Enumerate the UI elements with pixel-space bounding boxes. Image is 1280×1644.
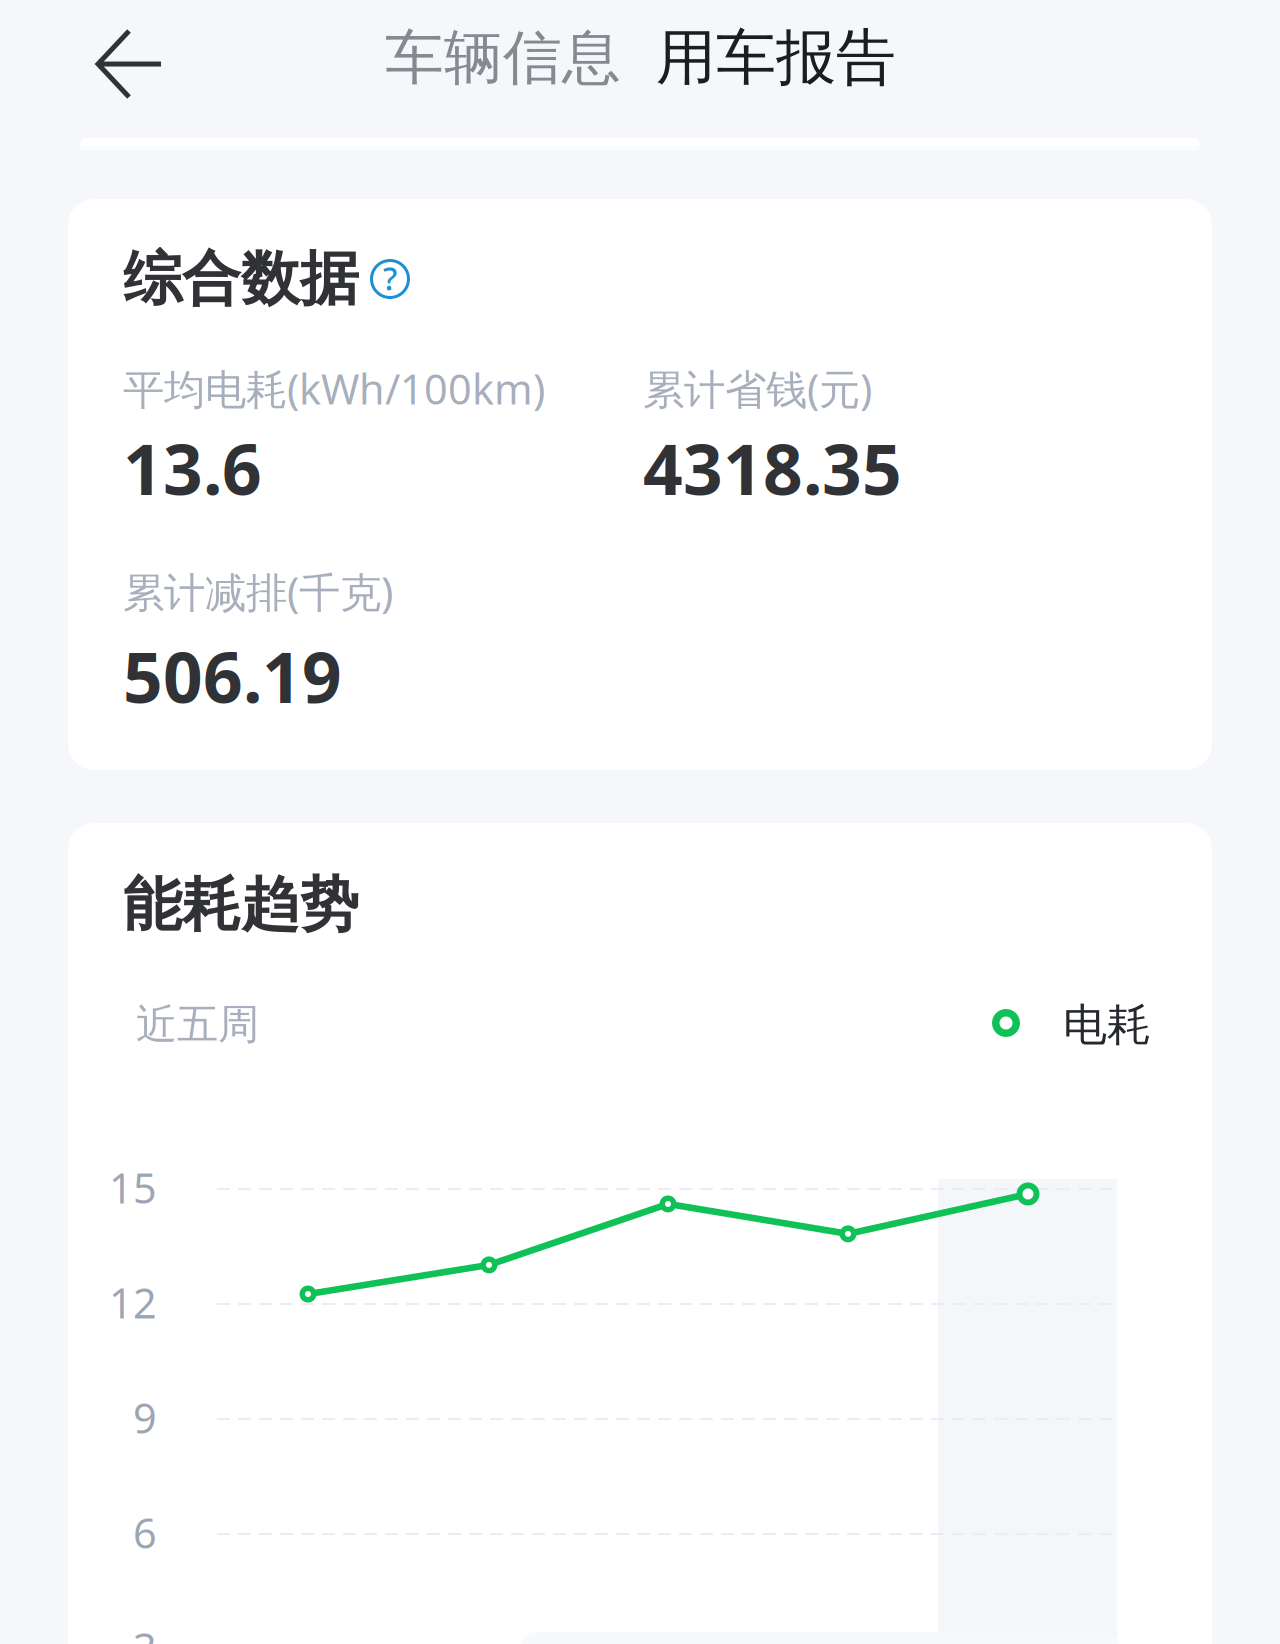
staticText: 用车报告 [656,21,896,95]
staticText: 15 [109,1160,157,1215]
staticText: 6 [133,1505,157,1560]
staticText: ? [383,257,397,299]
staticText: 累计减排(千克) [123,564,393,619]
staticText: 累计省钱(元) [643,361,872,416]
button[interactable]: 说明 [370,259,410,299]
staticText: 电耗 [1063,998,1151,1052]
button[interactable]: 车辆信息 [373,12,633,104]
staticText: 13.6 [123,422,262,514]
staticText: 平均电耗(kWh/100km) [123,361,545,416]
staticText: 能耗趋势 [123,869,359,941]
staticText: 506.19 [123,630,342,722]
staticText: 综合数据 [123,243,359,315]
staticText: 12 [109,1275,157,1330]
staticText: 9 [133,1390,157,1445]
button[interactable]: Back [68,10,192,118]
staticText: 3 [133,1620,157,1644]
button[interactable]: 用车报告 [644,11,908,105]
staticText: 4318.35 [643,422,902,514]
staticText: 近五周 [136,999,259,1050]
staticText: 车辆信息 [385,22,621,94]
